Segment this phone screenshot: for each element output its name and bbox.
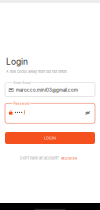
staticText: marocco.mini03@gmail.com — [16, 87, 78, 93]
staticText: Login — [6, 56, 28, 67]
staticText: Don't have an account? — [20, 156, 59, 160]
staticText: Password — [13, 102, 29, 106]
staticText: A few clicks away from our hot offers — [6, 69, 67, 74]
staticText: Enter Email — [13, 81, 31, 85]
staticText: REGISTER — [61, 156, 77, 160]
button[interactable]: REGISTER — [61, 156, 77, 160]
button[interactable]: LOGIN — [5, 132, 95, 144]
staticText: LOGIN — [44, 136, 56, 140]
